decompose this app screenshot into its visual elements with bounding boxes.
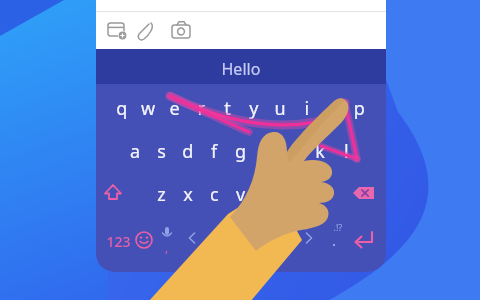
button[interactable]: Swipe keyboard preview [0,0,480,300]
